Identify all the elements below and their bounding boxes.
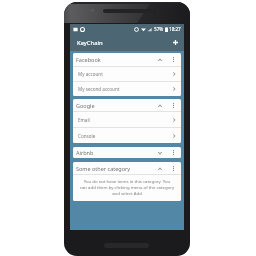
button[interactable]: Collapse	[155, 101, 164, 110]
button[interactable]: Collapse	[155, 164, 164, 173]
button[interactable]: Email	[73, 112, 181, 127]
button[interactable]: Airbnb	[73, 147, 181, 158]
button[interactable]: My second account	[73, 82, 181, 96]
staticText: Airbnb	[76, 149, 94, 156]
staticText: 57%	[154, 26, 164, 32]
staticText: Email	[78, 117, 90, 123]
button[interactable]: More options	[169, 148, 178, 157]
staticText: Facebook	[76, 56, 101, 63]
button[interactable]: Add	[169, 36, 182, 49]
staticText: 18:27	[169, 26, 181, 32]
button[interactable]: More options	[169, 164, 178, 173]
staticText: KeyChain	[77, 39, 103, 47]
button[interactable]: Console	[73, 128, 181, 143]
staticText: Google	[76, 102, 95, 109]
button[interactable]: Some other category	[73, 162, 181, 174]
button[interactable]: Collapse	[155, 55, 164, 64]
button[interactable]: My account	[73, 67, 181, 81]
button[interactable]: Google	[73, 99, 181, 111]
button[interactable]: Facebook	[73, 53, 181, 66]
button[interactable]: More options	[169, 101, 178, 110]
staticText: Some other category	[76, 165, 131, 172]
staticText: Console	[78, 133, 96, 139]
staticText: My account	[78, 71, 103, 77]
staticText: My second account	[78, 86, 120, 92]
button[interactable]: Expand	[155, 148, 164, 157]
staticText: You do not have items in this category. …	[77, 178, 177, 196]
button[interactable]: More options	[169, 55, 178, 64]
